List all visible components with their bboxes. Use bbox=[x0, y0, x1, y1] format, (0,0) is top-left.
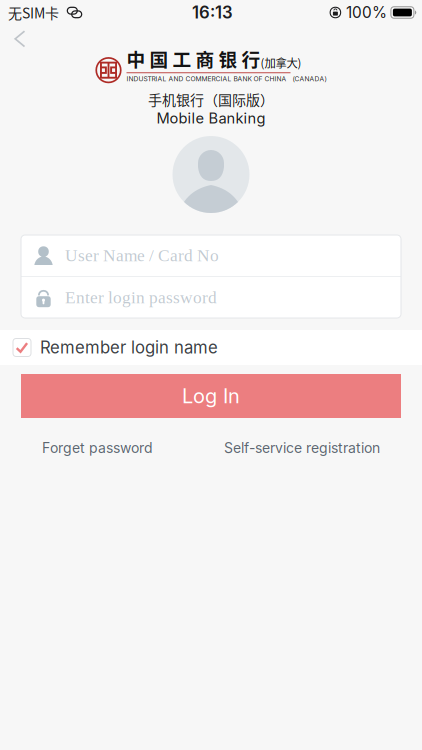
staticText: 100% bbox=[346, 3, 387, 22]
button[interactable]: Back bbox=[3, 25, 37, 53]
staticText: Forget password bbox=[42, 439, 153, 456]
staticText: 手机银行（国际版） bbox=[148, 89, 274, 109]
staticText: 无SIM卡 bbox=[8, 2, 59, 23]
staticText: INDUSTRIAL AND COMMERCIAL BANK OF CHINA … bbox=[126, 75, 326, 83]
button[interactable]: Self-service registration bbox=[224, 438, 380, 458]
staticText: (加拿大) bbox=[260, 54, 301, 71]
button[interactable]: Log In bbox=[21, 374, 401, 418]
staticText: Mobile Banking bbox=[156, 109, 265, 127]
staticText: 中 国 工 商 银 行 bbox=[126, 45, 260, 72]
staticText: User Name / Card No bbox=[65, 246, 219, 265]
staticText: Log In bbox=[182, 384, 240, 408]
button[interactable]: Remember login name bbox=[0, 330, 422, 365]
staticText: Enter login password bbox=[65, 288, 217, 307]
staticText: Self-service registration bbox=[224, 439, 380, 456]
staticText: Remember login name bbox=[40, 337, 218, 358]
button[interactable]: Forget password bbox=[42, 438, 153, 458]
staticText: 16:13 bbox=[192, 2, 233, 23]
